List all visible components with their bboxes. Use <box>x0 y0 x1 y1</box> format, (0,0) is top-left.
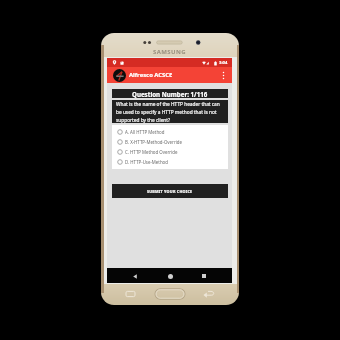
staticText: SAMSUNG <box>153 48 186 56</box>
staticText: A. All HTTP Method <box>125 129 165 135</box>
button[interactable]: More options <box>216 68 230 82</box>
staticText: C. HTTP Method Override <box>125 149 178 155</box>
button[interactable]: Alfresco logo <box>113 69 126 82</box>
staticText: Alfresco ACSCE <box>129 71 173 79</box>
button[interactable]: B. X-HTTP-Method-Override <box>112 137 228 147</box>
staticText: What is the name of the HTTP header that… <box>116 101 225 123</box>
button[interactable]: A. All HTTP Method <box>112 127 228 137</box>
staticText: SUBMIT YOUR CHOICE <box>147 189 193 194</box>
button[interactable]: SUBMIT YOUR CHOICE <box>112 184 228 198</box>
button[interactable]: Back <box>128 269 142 283</box>
button[interactable]: Home <box>163 269 177 283</box>
button[interactable]: D. HTTP-Use-Method <box>112 157 228 167</box>
staticText: 3:04 <box>219 60 228 66</box>
button[interactable]: C. HTTP Method Override <box>112 147 228 157</box>
button[interactable]: Recents <box>197 269 211 283</box>
staticText: D. HTTP-Use-Method <box>125 159 168 165</box>
staticText: B. X-HTTP-Method-Override <box>125 139 183 145</box>
staticText: Question Number: 1/116 <box>132 90 208 98</box>
